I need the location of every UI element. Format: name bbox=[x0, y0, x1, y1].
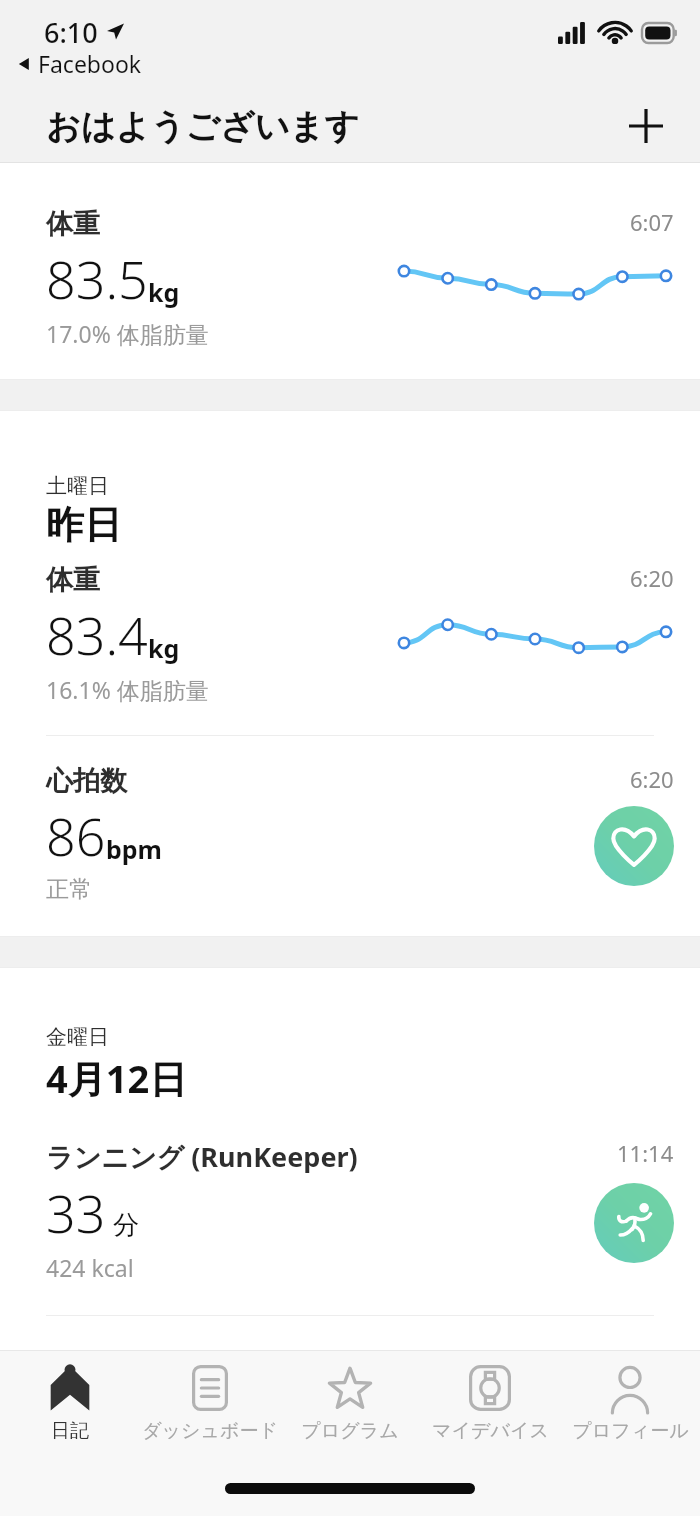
staticText: 86 bbox=[46, 800, 106, 871]
staticText: 424 kcal bbox=[46, 1252, 134, 1283]
staticText: 土曜日 bbox=[46, 473, 109, 499]
staticText: 83.4 bbox=[46, 599, 148, 670]
staticText: ランニング (RunKeeper) bbox=[46, 1138, 358, 1175]
staticText: 心拍数 bbox=[46, 764, 127, 798]
staticText: 体重 bbox=[46, 563, 100, 597]
button[interactable]: 体重 bbox=[0, 549, 700, 735]
button[interactable]: マイデバイス bbox=[420, 1351, 560, 1463]
button[interactable]: Add bbox=[618, 98, 674, 154]
button[interactable]: 日記 bbox=[0, 1351, 140, 1463]
staticText: マイデバイス bbox=[432, 1419, 549, 1443]
staticText: 4月12日 bbox=[46, 1052, 188, 1104]
staticText: bpm bbox=[106, 832, 162, 866]
button[interactable]: 体重 bbox=[0, 163, 700, 379]
button[interactable]: プログラム bbox=[280, 1351, 420, 1463]
staticText: kg bbox=[148, 631, 180, 665]
staticText: 昨日 bbox=[46, 501, 122, 549]
staticText: 分 bbox=[113, 1209, 139, 1242]
staticText: 正常 bbox=[46, 875, 92, 904]
staticText: 83.5 bbox=[46, 243, 148, 314]
staticText: 6:20 bbox=[630, 764, 674, 794]
staticText: 11:14 bbox=[617, 1138, 674, 1168]
staticText: プロフィール bbox=[572, 1419, 689, 1443]
staticText: kg bbox=[148, 275, 180, 309]
button[interactable]: ダッシュボード bbox=[140, 1351, 280, 1463]
button[interactable]: 心拍数 bbox=[0, 736, 700, 936]
staticText: 6:07 bbox=[630, 207, 674, 237]
staticText: ダッシュボード bbox=[142, 1419, 278, 1443]
button[interactable]: プロフィール bbox=[560, 1351, 700, 1463]
staticText: Facebook bbox=[38, 48, 142, 79]
staticText: 体重 bbox=[46, 207, 100, 241]
staticText: 33 bbox=[46, 1177, 106, 1248]
staticText: プログラム bbox=[301, 1419, 399, 1443]
staticText: 6:20 bbox=[630, 563, 674, 593]
staticText: 日記 bbox=[51, 1419, 89, 1443]
staticText: 17.0% 体脂肪量 bbox=[46, 318, 209, 349]
staticText: 金曜日 bbox=[46, 1024, 109, 1050]
button[interactable]: ランニング (RunKeeper) bbox=[0, 1104, 700, 1315]
staticText: 16.1% 体脂肪量 bbox=[46, 674, 209, 705]
staticText: おはようございます bbox=[46, 105, 360, 148]
staticText: 6:10 bbox=[44, 14, 98, 51]
